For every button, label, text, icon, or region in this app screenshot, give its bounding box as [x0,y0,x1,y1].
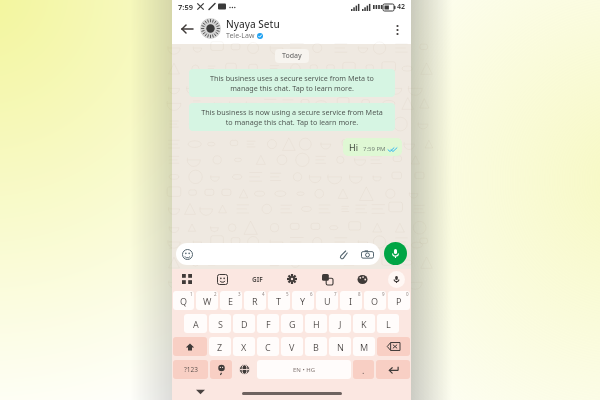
staticText: M [360,341,369,353]
staticText: G [289,318,296,330]
staticText: 0 [406,291,409,297]
button[interactable]: W [196,291,218,310]
staticText: I [349,295,353,307]
button[interactable]: Shift [173,337,207,356]
staticText: ?123 [184,365,198,374]
button[interactable]: Z [209,337,231,356]
staticText: Q [180,295,188,307]
staticText: S [218,318,223,330]
button[interactable]: S [209,314,231,333]
staticText: O [371,295,379,307]
staticText: 7:59 PM [363,145,386,153]
button[interactable]: Q [173,291,194,310]
button[interactable]: Attach [176,243,380,265]
staticText: 7 [334,291,337,297]
staticText: J [339,318,342,330]
button[interactable]: Enter [376,360,410,379]
button[interactable]: Stickers [213,270,231,288]
button[interactable]: H [305,314,327,333]
staticText: Hi [349,141,358,153]
staticText: L [386,318,391,330]
staticText: 3 [238,291,241,297]
staticText: F [266,318,271,330]
staticText: U [324,295,331,307]
staticText: B [313,341,319,353]
staticText: Today [282,51,302,61]
button[interactable]: Camera [361,248,374,261]
staticText: . [362,364,365,376]
button[interactable]: Emoji and comma [210,360,232,379]
staticText: P [396,295,402,307]
button[interactable]: F [257,314,279,333]
staticText: 6 [310,291,313,297]
button[interactable]: Y [292,291,314,310]
button[interactable]: Space [257,360,351,379]
staticText: E [228,295,234,307]
button[interactable]: Language [234,360,255,379]
button[interactable]: B [305,337,327,356]
button[interactable]: M [353,337,375,356]
staticText: 2 [214,291,217,297]
staticText: W [203,295,212,307]
staticText: D [241,318,248,330]
button[interactable]: Voice message [384,242,407,265]
button[interactable]: N [329,337,351,356]
button[interactable]: This business uses a secure service from… [189,69,395,97]
staticText: N [337,341,344,353]
staticText: A [193,318,199,330]
staticText: 4 [262,291,265,297]
button[interactable]: Numbers [173,360,208,379]
staticText: R [252,295,258,307]
button[interactable]: G [281,314,303,333]
button[interactable]: E [220,291,242,310]
button[interactable]: C [257,337,279,356]
staticText: H [313,318,320,330]
staticText: V [289,341,295,353]
staticText: 42 [397,2,406,12]
staticText: Y [300,295,306,307]
button[interactable]: D [233,314,255,333]
staticText: 9 [382,291,385,297]
button[interactable]: Back [177,19,197,39]
button[interactable]: Backspace [377,337,410,356]
button[interactable]: Apps [178,270,196,288]
staticText: Nyaya Setu [226,17,280,31]
staticText: C [265,341,271,353]
button[interactable]: X [233,337,255,356]
button[interactable]: Theme [353,270,371,288]
button[interactable]: This business is now using a secure serv… [189,103,395,131]
button[interactable]: U [316,291,338,310]
button[interactable]: Translate [318,270,336,288]
staticText: This business uses a secure service from… [197,73,387,93]
button[interactable]: T [268,291,290,310]
staticText: GIF [252,275,263,284]
button[interactable]: Voice input [388,271,405,288]
button[interactable]: L [377,314,399,333]
button[interactable]: Period [353,360,374,379]
button[interactable]: R [244,291,266,310]
button[interactable]: More options [388,20,406,38]
staticText: X [241,341,247,353]
staticText: 7:59 [178,2,193,12]
button[interactable]: I [340,291,362,310]
staticText: 5 [286,291,289,297]
staticText: K [361,318,367,330]
button[interactable]: P [388,291,410,310]
button[interactable]: Attach [337,248,349,260]
button[interactable]: V [281,337,303,356]
button[interactable]: J [329,314,351,333]
staticText: EN • HG [293,366,316,374]
button[interactable]: GIF [248,270,266,288]
staticText: T [276,295,282,307]
button[interactable]: Settings [283,270,301,288]
staticText: 1 [190,291,193,297]
staticText: Z [217,341,223,353]
button[interactable]: Hi [343,138,402,156]
button[interactable]: Nyaya Setu [226,17,388,41]
staticText: This business is now using a secure serv… [197,107,387,127]
button[interactable]: Hide keyboard [194,385,206,397]
button[interactable]: A [184,314,207,333]
button[interactable]: K [353,314,375,333]
staticText: Tele-Law [226,31,255,41]
button[interactable]: O [364,291,386,310]
